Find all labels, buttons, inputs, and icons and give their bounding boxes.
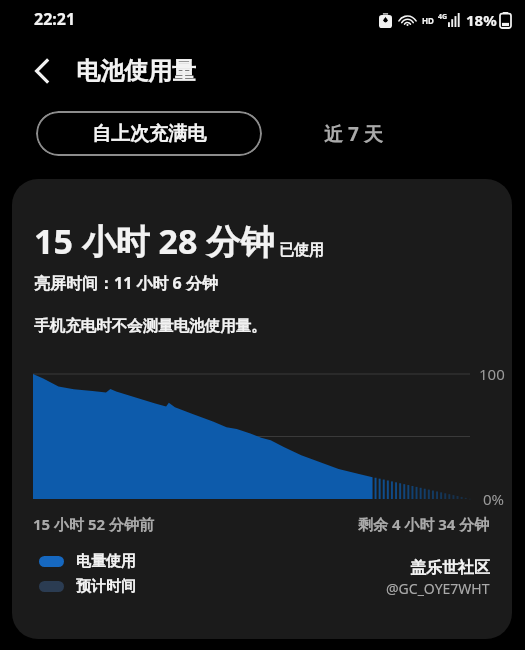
staticText: @GC_OYE7WHT [386, 579, 490, 598]
staticText: 手机充电时不会测量电池使用量。 [34, 316, 267, 336]
button[interactable]: 近 7 天 [312, 111, 395, 156]
staticText: 近 7 天 [324, 121, 383, 147]
staticText: 18% [466, 10, 497, 30]
staticText: 电量使用 [76, 552, 136, 571]
staticText: 电池使用量 [76, 56, 196, 86]
staticText: 22:21 [34, 8, 76, 30]
staticText: 预计时间 [76, 577, 136, 596]
staticText: 0% [483, 489, 505, 509]
button[interactable]: 自上次充满电 [36, 111, 262, 156]
staticText: 15 小时 52 分钟前 [33, 514, 155, 534]
staticText: 自上次充满电 [92, 122, 206, 146]
staticText: 剩余 4 小时 34 分钟 [358, 514, 490, 534]
staticText: 亮屏时间：11 小时 6 分钟 [34, 272, 218, 294]
staticText: 4G [438, 12, 448, 22]
staticText: 已使用 [279, 241, 324, 260]
staticText: 15 小时 28 分钟 [34, 218, 275, 264]
button[interactable]: Back [22, 51, 62, 91]
staticText: HD [422, 15, 434, 26]
staticText: 盖乐世社区 [410, 558, 490, 578]
staticText: 100 [479, 364, 505, 384]
